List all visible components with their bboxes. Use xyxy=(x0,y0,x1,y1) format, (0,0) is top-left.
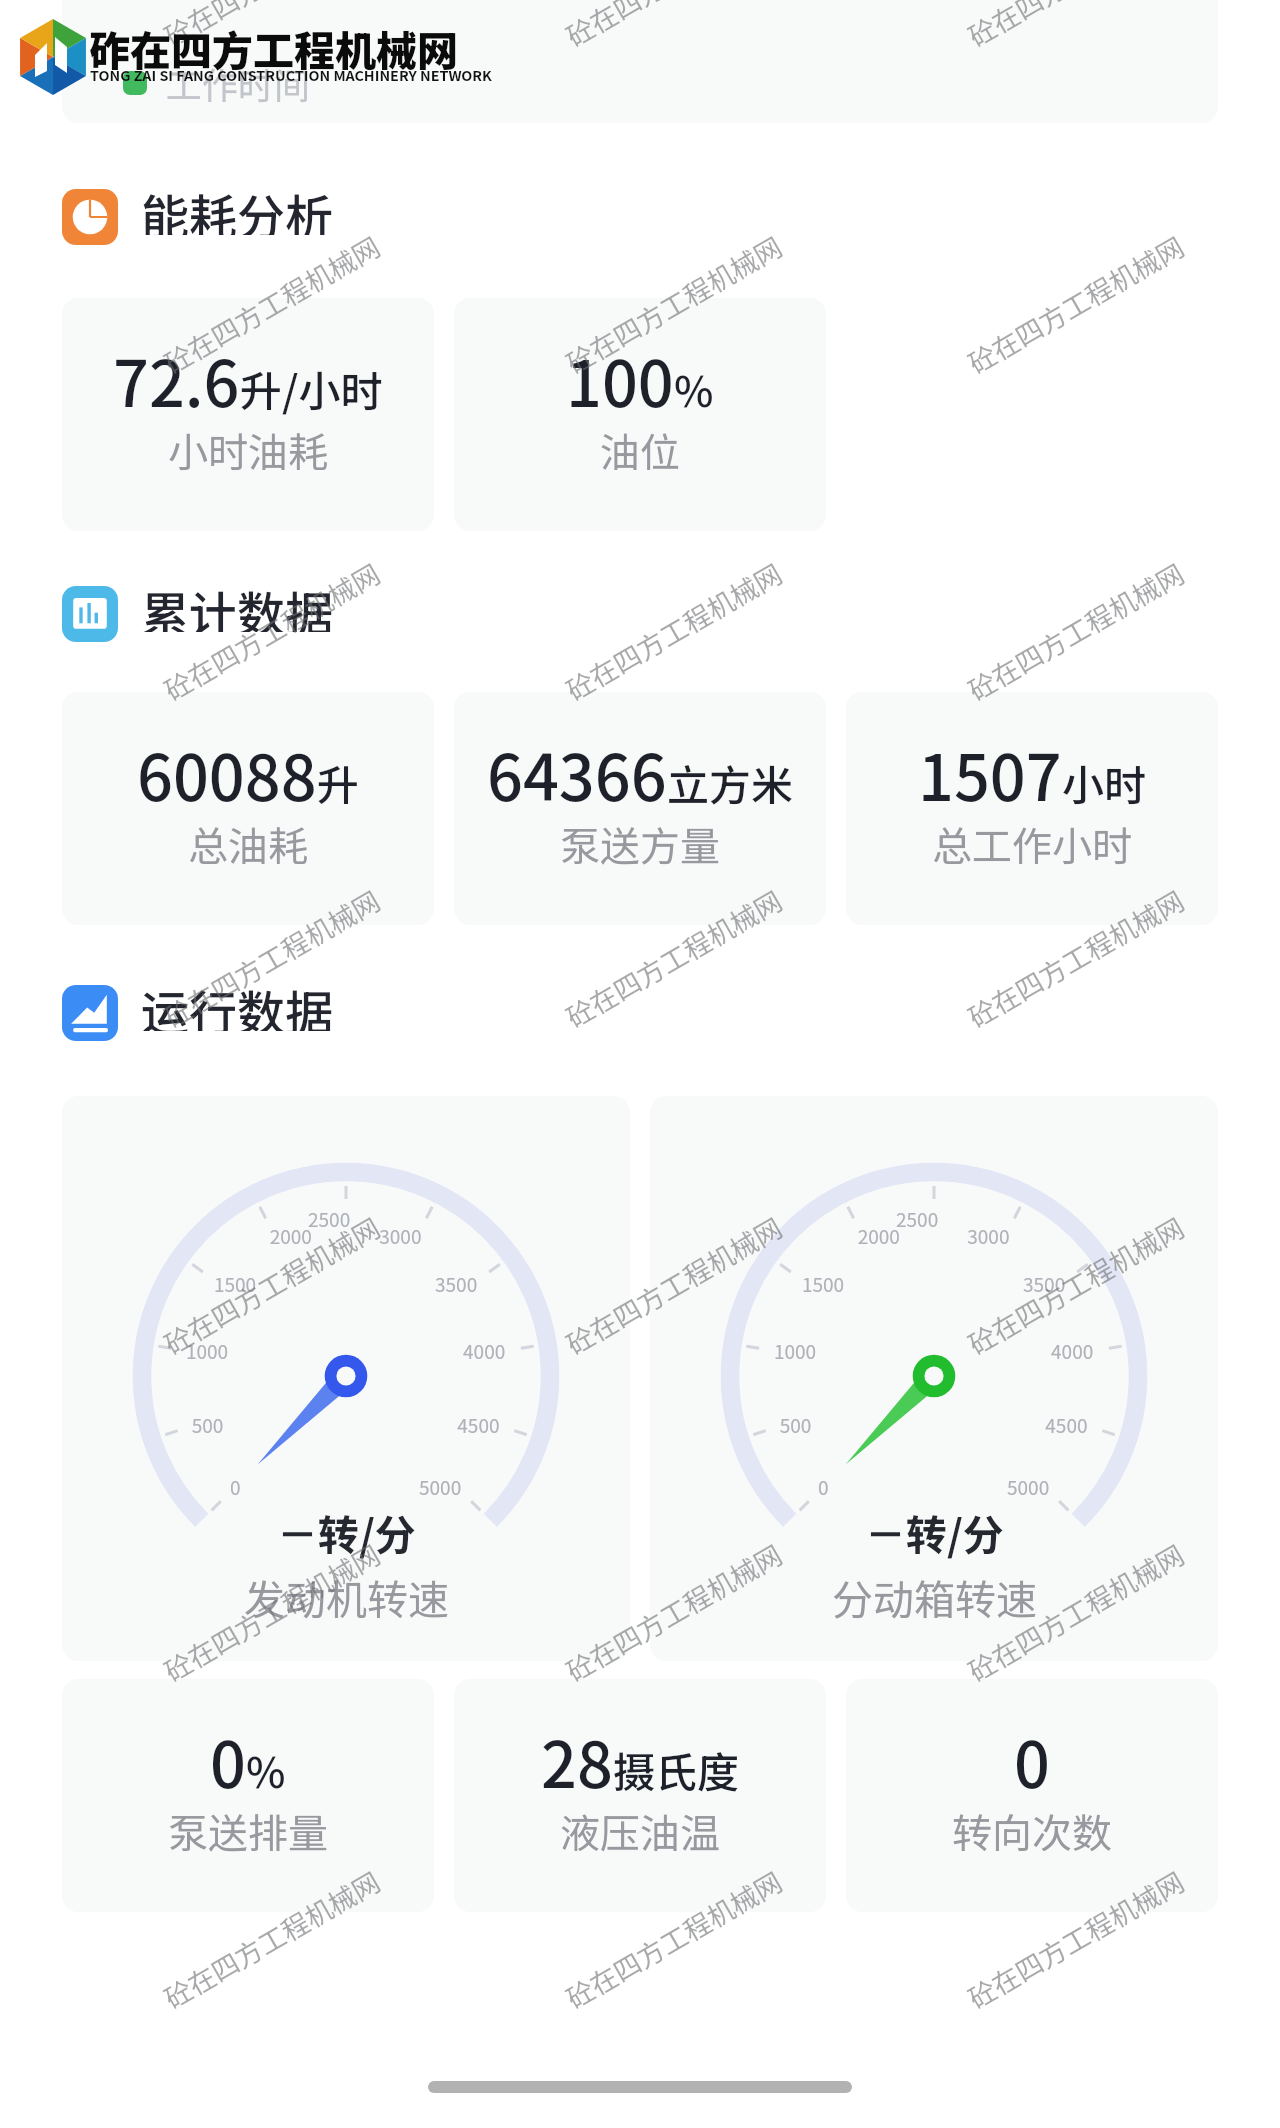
button[interactable]: 0 xyxy=(62,1679,434,1912)
staticText: 28 xyxy=(541,1715,613,1806)
button[interactable]: 28 xyxy=(454,1679,826,1912)
staticText: 分动箱转速 xyxy=(832,1567,1037,1626)
staticText: 累计数据 xyxy=(141,576,334,632)
staticText: 60088 xyxy=(137,728,317,819)
other: 运行数据 xyxy=(62,985,118,1041)
button[interactable]: 能耗分析 xyxy=(62,189,1218,245)
staticText: 泵送方量 xyxy=(560,815,720,873)
staticText: 运行数据 xyxy=(141,975,334,1031)
button[interactable]: －转/分 xyxy=(650,1096,1218,1661)
staticText: TONG ZAI SI FANG CONSTRUCTION MACHINERY … xyxy=(90,64,492,85)
button[interactable]: 1507 xyxy=(846,692,1218,925)
staticText: 能耗分析 xyxy=(141,179,334,235)
staticText: % xyxy=(674,358,714,419)
staticText: 0 xyxy=(1014,1715,1050,1806)
staticText: 0 xyxy=(210,1715,246,1806)
staticText: －转/分 xyxy=(277,1502,416,1561)
staticText: 油位 xyxy=(600,421,680,479)
staticText: －转/分 xyxy=(865,1502,1004,1561)
button[interactable]: 累计数据 xyxy=(62,586,1218,642)
staticText: 发动机转速 xyxy=(244,1567,449,1626)
staticText: 立方米 xyxy=(667,752,794,813)
staticText: 工作时间 xyxy=(166,57,311,109)
staticText: 升 xyxy=(317,752,360,813)
button[interactable]: 0 xyxy=(846,1679,1218,1912)
button[interactable]: 运行数据 xyxy=(62,985,1218,1041)
button[interactable]: 64366 xyxy=(454,692,826,925)
staticText: 1507 xyxy=(918,728,1062,819)
staticText: 砟在四方工程机械网 xyxy=(89,18,458,77)
button[interactable]: 72.6 xyxy=(62,298,434,531)
button[interactable]: 100 xyxy=(454,298,826,531)
other: 能耗分析 xyxy=(62,189,118,245)
staticText: 摄氏度 xyxy=(613,1739,740,1800)
staticText: 100 xyxy=(566,334,674,425)
staticText: 总油耗 xyxy=(188,815,308,873)
button[interactable]: 60088 xyxy=(62,692,434,925)
staticText: 总工作小时 xyxy=(932,815,1132,873)
staticText: 泵送排量 xyxy=(168,1802,328,1860)
staticText: % xyxy=(246,1739,286,1800)
staticText: 液压油温 xyxy=(560,1802,720,1860)
staticText: 转向次数 xyxy=(952,1802,1112,1860)
button[interactable]: 工作时间 xyxy=(62,0,1218,123)
button[interactable]: －转/分 xyxy=(62,1096,630,1661)
staticText: 升/小时 xyxy=(240,358,383,419)
staticText: 64366 xyxy=(487,728,667,819)
staticText: 小时 xyxy=(1062,752,1147,813)
staticText: 72.6 xyxy=(113,334,240,425)
staticText: 小时油耗 xyxy=(168,421,328,479)
other: 累计数据 xyxy=(62,586,118,642)
